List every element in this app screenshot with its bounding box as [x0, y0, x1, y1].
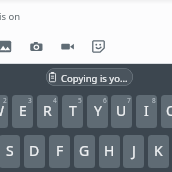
- staticText: 6: [103, 96, 107, 105]
- staticText: R: [43, 101, 52, 120]
- button[interactable]: J: [123, 135, 144, 168]
- staticText: D: [29, 141, 40, 160]
- staticText: 2: [3, 96, 7, 105]
- staticText: Y: [94, 101, 102, 120]
- button[interactable]: Take photo: [30, 40, 43, 53]
- staticText: S: [6, 141, 14, 160]
- button[interactable]: Insert image: [0, 40, 12, 53]
- staticText: 8: [152, 96, 156, 105]
- staticText: E: [19, 101, 27, 120]
- button[interactable]: Record video: [61, 40, 74, 53]
- button[interactable]: 5: [62, 95, 83, 128]
- staticText: 3: [28, 96, 32, 105]
- button[interactable]: D: [24, 135, 45, 168]
- button[interactable]: K: [148, 135, 169, 168]
- staticText: G: [79, 141, 90, 160]
- button[interactable]: H: [99, 135, 120, 168]
- button[interactable]: S: [0, 135, 20, 168]
- button[interactable]: 2: [0, 95, 8, 128]
- staticText: F: [56, 141, 64, 160]
- staticText: Copying is yo...: [61, 72, 128, 85]
- staticText: K: [154, 141, 163, 160]
- staticText: 5: [78, 96, 82, 105]
- staticText: is on: [0, 10, 21, 23]
- staticText: U: [116, 101, 127, 120]
- button[interactable]: F: [49, 135, 70, 168]
- staticText: I: [144, 101, 149, 120]
- staticText: 4: [53, 96, 57, 105]
- staticText: O: [166, 101, 172, 120]
- button[interactable]: Copying is yo...: [46, 68, 133, 86]
- button[interactable]: 7: [111, 95, 132, 128]
- button[interactable]: 9: [161, 95, 172, 128]
- staticText: J: [132, 141, 136, 160]
- button[interactable]: G: [74, 135, 95, 168]
- button[interactable]: 3: [12, 95, 33, 128]
- staticText: W: [0, 101, 5, 120]
- staticText: H: [104, 141, 115, 160]
- staticText: 7: [127, 96, 131, 105]
- button[interactable]: 8: [136, 95, 157, 128]
- button[interactable]: 6: [87, 95, 108, 128]
- staticText: T: [69, 101, 77, 120]
- button[interactable]: 4: [37, 95, 58, 128]
- button[interactable]: Stickers: [92, 40, 105, 53]
